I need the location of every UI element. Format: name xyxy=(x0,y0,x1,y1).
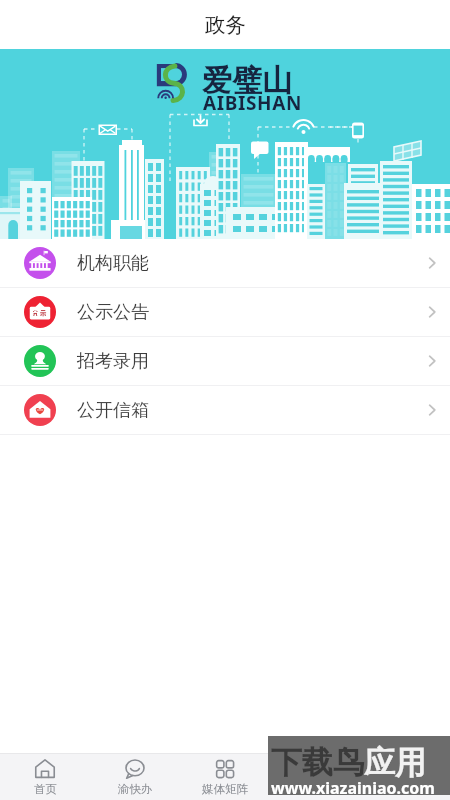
staticText: 媒体矩阵 xyxy=(202,782,248,796)
staticText: 政务 xyxy=(304,782,327,796)
button[interactable]: 我的 xyxy=(360,754,450,800)
staticText: www.xiazainiao.com xyxy=(271,777,435,799)
staticText: 招考录用 xyxy=(77,350,149,373)
staticText: 公示公告 xyxy=(77,301,149,324)
button[interactable]: 公开信箱 xyxy=(0,386,450,435)
staticText: 首页 xyxy=(34,782,57,796)
staticText: 爱璧山 xyxy=(202,62,292,100)
staticText: 应用 xyxy=(364,743,426,782)
staticText: 我的 xyxy=(394,782,417,796)
staticText: 政务 xyxy=(205,12,246,38)
button[interactable]: 公示公告 xyxy=(0,288,450,337)
button[interactable]: 招考录用 xyxy=(0,337,450,386)
button[interactable]: 机构职能 xyxy=(0,239,450,288)
staticText: 下载鸟 xyxy=(271,743,364,782)
staticText: 公开信箱 xyxy=(77,399,149,422)
button[interactable]: 政务 xyxy=(270,754,360,800)
button[interactable]: 首页 xyxy=(0,754,90,800)
button[interactable]: 媒体矩阵 xyxy=(180,754,270,800)
staticText: 渝快办 xyxy=(118,782,153,796)
staticText: 机构职能 xyxy=(77,252,149,275)
staticText: AIBISHAN xyxy=(203,90,302,116)
button[interactable]: 渝快办 xyxy=(90,754,180,800)
